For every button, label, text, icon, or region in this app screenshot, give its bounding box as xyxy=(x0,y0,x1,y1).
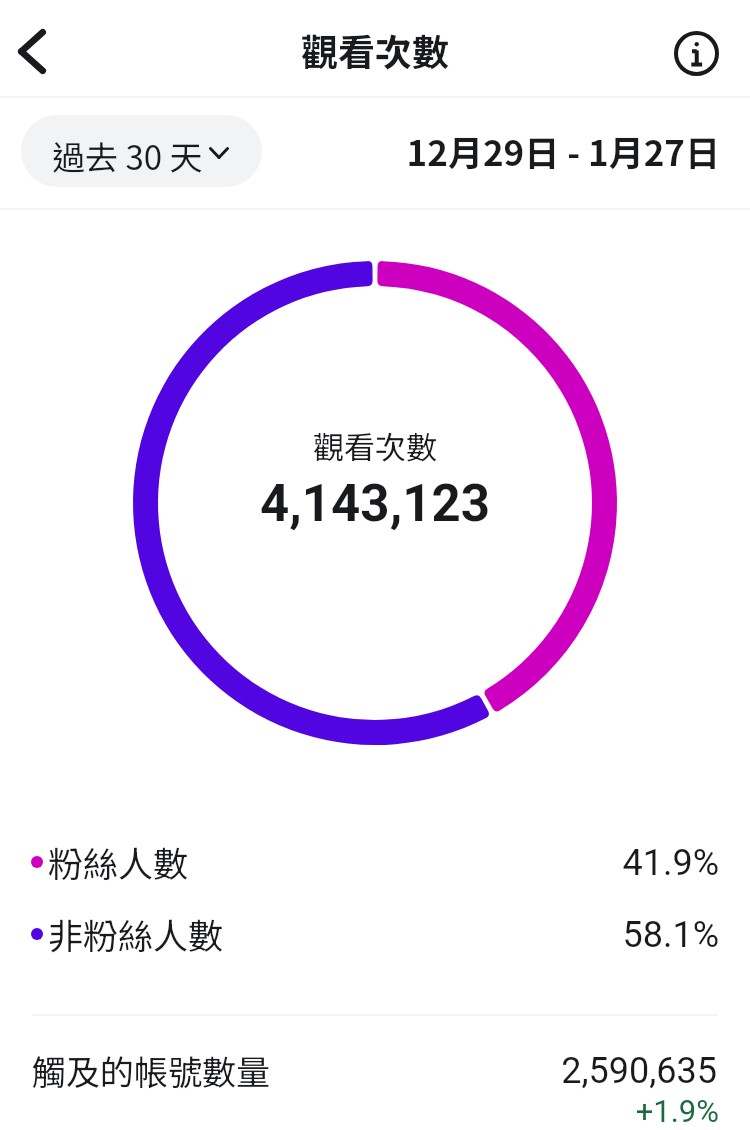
staticText: 2,590,635 xyxy=(0,1050,717,1092)
staticText: 觀看次數 xyxy=(0,23,750,77)
button[interactable]: Information xyxy=(664,21,728,85)
button[interactable]: 粉絲人數 xyxy=(0,830,750,894)
staticText: 粉絲人數 xyxy=(48,836,189,887)
staticText: 觸及的帳號數量 xyxy=(32,1046,270,1095)
staticText: 非粉絲人數 xyxy=(48,908,224,959)
staticText: +1.9% xyxy=(0,1093,719,1129)
button[interactable]: 非粉絲人數 xyxy=(0,902,750,966)
button[interactable]: 觸及的帳號數量 xyxy=(0,1040,750,1130)
staticText: 12月29日 - 1月27日 xyxy=(0,125,720,176)
button[interactable]: 過去 30 天 xyxy=(21,115,262,187)
staticText: 58.1% xyxy=(0,914,719,956)
staticText: 觀看次數 xyxy=(0,423,750,468)
staticText: 過去 30 天 xyxy=(52,132,203,180)
staticText: 4,143,123 xyxy=(0,474,750,534)
button[interactable]: Back xyxy=(0,7,64,95)
staticText: 41.9% xyxy=(0,842,719,884)
